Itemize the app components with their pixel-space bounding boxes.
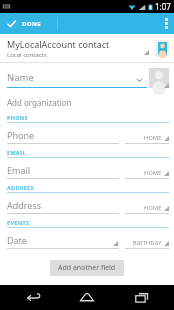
button[interactable]: Home	[67, 285, 107, 310]
staticText: Local contacts	[7, 51, 47, 59]
button[interactable]: HOME	[125, 204, 169, 214]
button[interactable]: Recent apps	[121, 285, 161, 310]
staticText: 1:07	[155, 1, 171, 12]
button[interactable]: DONE	[0, 13, 49, 34]
staticText: BIRTHDAY	[133, 239, 162, 246]
button[interactable]: MyLocalAccount contact	[0, 34, 174, 62]
button[interactable]: Phone	[7, 129, 119, 144]
staticText: HOME	[144, 204, 162, 211]
button[interactable]: Name	[0, 63, 149, 93]
staticText: EVENTS	[7, 219, 30, 226]
button[interactable]: Add another field	[50, 260, 124, 276]
button[interactable]: HOME	[125, 169, 169, 179]
staticText: HOME	[144, 169, 162, 176]
button[interactable]: Address	[7, 199, 119, 214]
button[interactable]: Back	[14, 285, 54, 310]
staticText: ADDRESS	[7, 184, 34, 191]
button[interactable]: Email	[7, 164, 119, 179]
button[interactable]: BIRTHDAY	[125, 239, 169, 249]
staticText: DONE	[22, 20, 41, 28]
staticText: Name	[7, 71, 136, 84]
staticText: Add organization	[7, 97, 72, 108]
button[interactable]: Add contact photo	[149, 68, 169, 88]
staticText: Date	[7, 234, 113, 246]
button[interactable]: HOME	[125, 134, 169, 144]
staticText: MyLocalAccount contact	[7, 38, 110, 50]
staticText: Email	[7, 164, 119, 176]
staticText: Phone	[7, 129, 119, 141]
staticText: Add another field	[58, 263, 116, 273]
button[interactable]: Add organization	[0, 93, 174, 111]
staticText: Address	[7, 199, 119, 211]
button[interactable]: More options	[158, 13, 174, 34]
button[interactable]: Date	[7, 234, 119, 249]
staticText: HOME	[144, 134, 162, 141]
staticText: EMAIL	[7, 149, 26, 156]
staticText: PHONE	[7, 114, 29, 121]
